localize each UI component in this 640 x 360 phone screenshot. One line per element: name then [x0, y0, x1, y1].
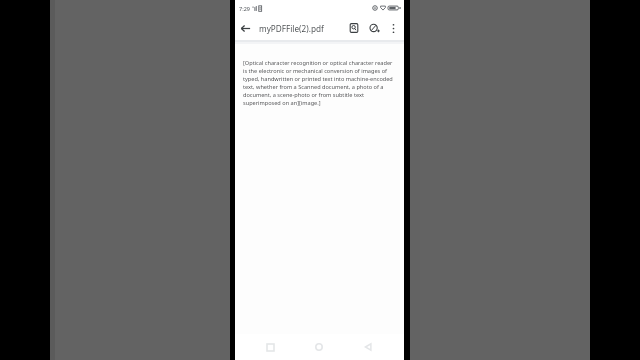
- staticText: [Optical character recognition or optica…: [243, 59, 394, 107]
- button[interactable]: Add annotation: [364, 18, 384, 38]
- staticText: myPDFFile(2).pdf: [259, 23, 324, 34]
- button[interactable]: Search document: [344, 18, 364, 38]
- button[interactable]: Back: [235, 18, 255, 38]
- button[interactable]: Back: [357, 336, 379, 358]
- button[interactable]: Home: [308, 336, 330, 358]
- staticText: 7:29: [239, 5, 250, 12]
- button[interactable]: Recent apps: [259, 336, 281, 358]
- button[interactable]: More options: [384, 19, 402, 37]
